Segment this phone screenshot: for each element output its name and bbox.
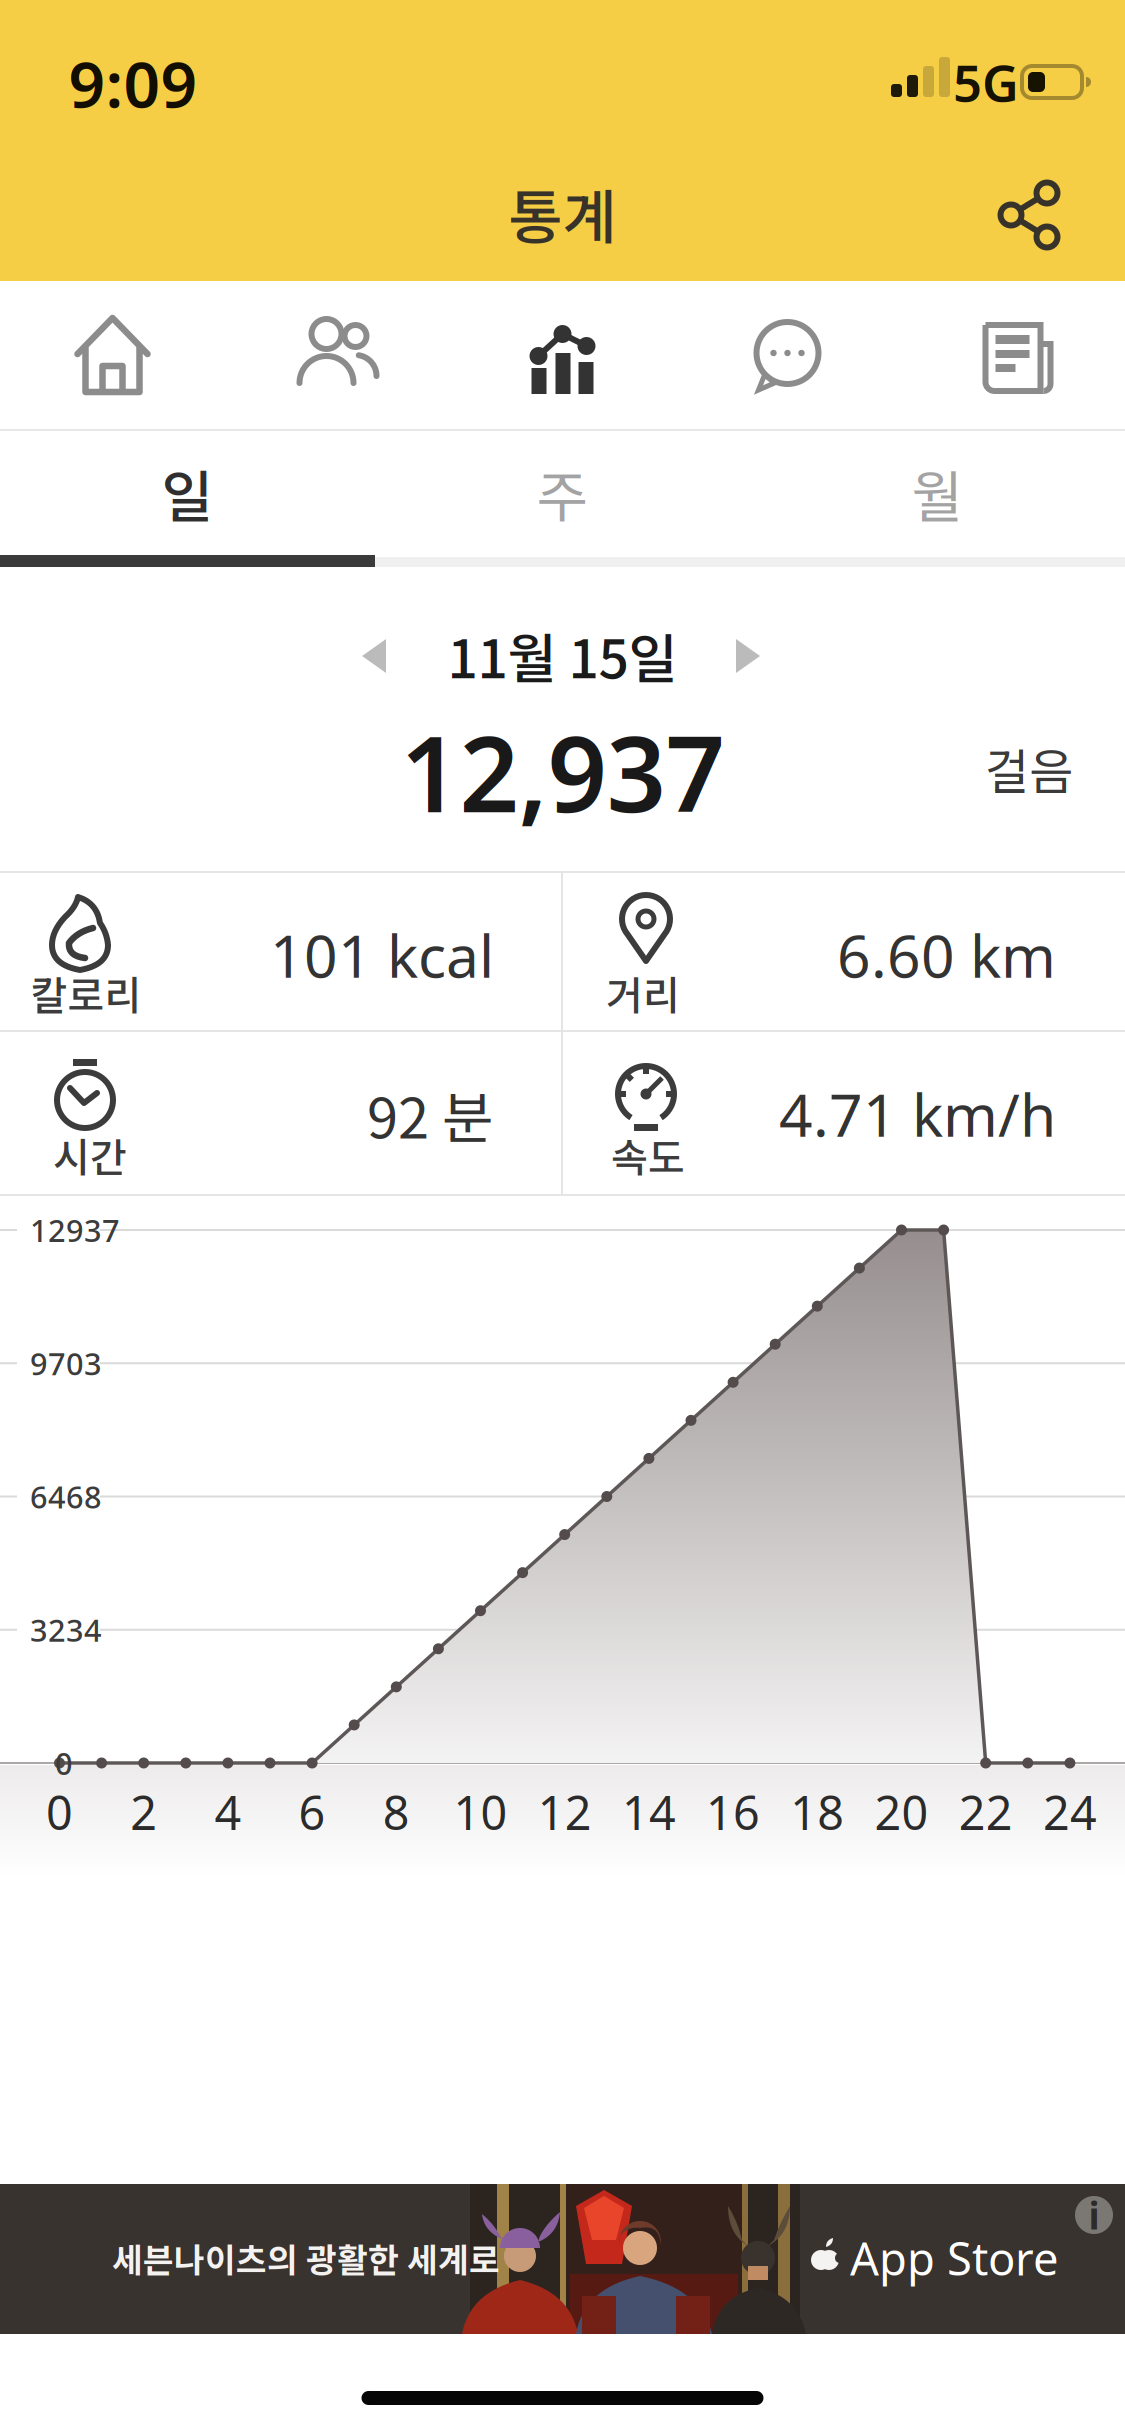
staticText: 세븐나이츠의 광활한 세계로 [112, 2234, 500, 2282]
button[interactable]: 일 [0, 431, 375, 555]
staticText: 4 [214, 1781, 241, 1843]
staticText: 2 [130, 1781, 157, 1843]
staticText: 칼로리 [30, 964, 141, 1022]
staticText: 6 [299, 1781, 326, 1843]
button[interactable]: 뉴스 [900, 282, 1125, 430]
staticText: i [1088, 2190, 1099, 2240]
staticText: 6.60 km [837, 916, 1056, 994]
staticText: 12 [538, 1781, 592, 1843]
button[interactable]: 통계 [450, 282, 675, 430]
button[interactable]: 광고 정보 [1075, 2196, 1113, 2234]
staticText: 101 kcal [270, 916, 494, 994]
staticText: 16 [706, 1781, 760, 1843]
button[interactable]: 다음 날짜 [720, 628, 776, 684]
staticText: 12,937 [400, 703, 724, 841]
staticText: 18 [790, 1781, 844, 1843]
button[interactable]: 이전 날짜 [346, 628, 402, 684]
button[interactable]: 친구 [225, 282, 450, 430]
staticText: 속도 [611, 1126, 685, 1184]
staticText: 24 [1043, 1781, 1097, 1843]
staticText: 주 [536, 452, 588, 534]
staticText: 0 [55, 1743, 73, 1783]
staticText: 시간 [53, 1126, 127, 1184]
button[interactable]: 주 [375, 431, 750, 555]
staticText: 통계 [508, 170, 616, 255]
staticText: 5G [953, 48, 1019, 116]
staticText: 22 [959, 1781, 1013, 1843]
staticText: 92 분 [367, 1073, 494, 1155]
staticText: 12937 [30, 1210, 120, 1250]
staticText: 월 [911, 452, 963, 534]
button[interactable]: 채팅 [675, 282, 900, 430]
staticText: 거리 [606, 964, 680, 1022]
staticText: 9703 [30, 1343, 102, 1384]
staticText: 3234 [30, 1609, 102, 1650]
staticText: 0 [46, 1781, 73, 1843]
staticText: 14 [622, 1781, 676, 1843]
button[interactable]: 광고: 세븐나이츠 [0, 2184, 1125, 2334]
staticText: 일 [161, 452, 213, 534]
button[interactable]: 월 [750, 431, 1125, 555]
staticText: 4.71 km/h [779, 1075, 1056, 1153]
button[interactable]: 홈 [0, 282, 225, 430]
button[interactable]: 공유 [974, 160, 1084, 270]
staticText: 6468 [30, 1476, 102, 1517]
staticText: App Store [850, 2228, 1059, 2288]
staticText: 9:09 [68, 40, 197, 125]
staticText: 8 [383, 1781, 410, 1843]
staticText: 걸음 [985, 733, 1073, 803]
staticText: 11월 15일 [447, 616, 677, 694]
staticText: 10 [453, 1781, 507, 1843]
staticText: 20 [874, 1781, 928, 1843]
